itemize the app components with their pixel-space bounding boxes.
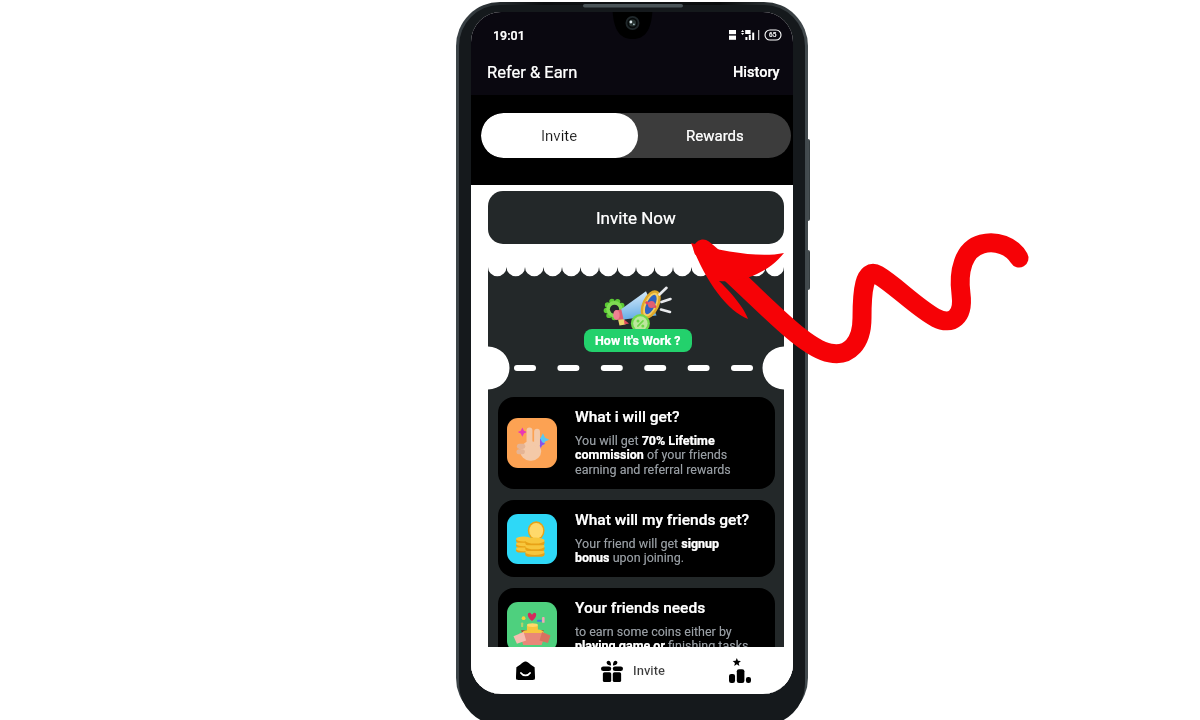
button[interactable]: What i will get? (498, 397, 775, 489)
button[interactable]: History (731, 60, 782, 85)
button[interactable]: Invite Now (488, 191, 784, 244)
button[interactable]: Invite (579, 647, 686, 694)
staticText: 65 (769, 31, 777, 39)
staticText: You will get 70% Lifetime commission of … (575, 433, 754, 478)
staticText: What i will get? (575, 408, 680, 426)
staticText: Your friend will get signup bonus upon j… (575, 536, 754, 566)
staticText: Invite Now (596, 208, 676, 228)
staticText: Invite (633, 663, 665, 678)
button[interactable]: Home (471, 647, 579, 694)
button[interactable]: Rewards (638, 113, 791, 158)
staticText: to earn some coins either by playing gam… (575, 624, 754, 654)
button[interactable]: Leaderboard (686, 647, 793, 694)
staticText: Your friends needs (575, 599, 706, 617)
staticText: 19:01 (493, 28, 525, 43)
staticText: History (733, 64, 780, 81)
staticText: Refer & Earn (487, 63, 578, 82)
staticText: Rewards (686, 127, 744, 145)
staticText: Invite (541, 127, 578, 145)
button[interactable]: Invite (481, 113, 638, 158)
staticText: How It's Work ? (595, 333, 681, 348)
button[interactable]: What will my friends get? (498, 500, 775, 577)
staticText: What will my friends get? (575, 511, 750, 529)
button[interactable]: Your friends needs (498, 588, 775, 665)
button[interactable]: How It's Work ? (584, 329, 692, 352)
